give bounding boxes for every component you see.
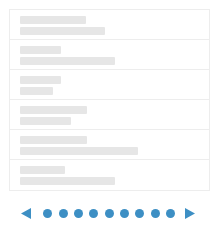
button[interactable]: Page 8 (151, 209, 160, 218)
button[interactable] (10, 160, 209, 190)
button[interactable]: Page 2 (59, 209, 68, 218)
button[interactable] (10, 130, 209, 160)
button[interactable] (10, 10, 209, 40)
button[interactable]: Page 3 (74, 209, 83, 218)
button[interactable]: Page 4 (89, 209, 98, 218)
button[interactable] (10, 70, 209, 100)
button[interactable]: Page 9 (166, 209, 175, 218)
button[interactable]: Previous page (21, 208, 31, 219)
button[interactable] (10, 100, 209, 130)
button[interactable]: Page 1 (43, 209, 52, 218)
button[interactable]: Page 7 (135, 209, 144, 218)
button[interactable]: Next page (185, 208, 195, 219)
button[interactable]: Page 6 (120, 209, 129, 218)
button[interactable]: Page 5 (105, 209, 114, 218)
button[interactable] (10, 40, 209, 70)
